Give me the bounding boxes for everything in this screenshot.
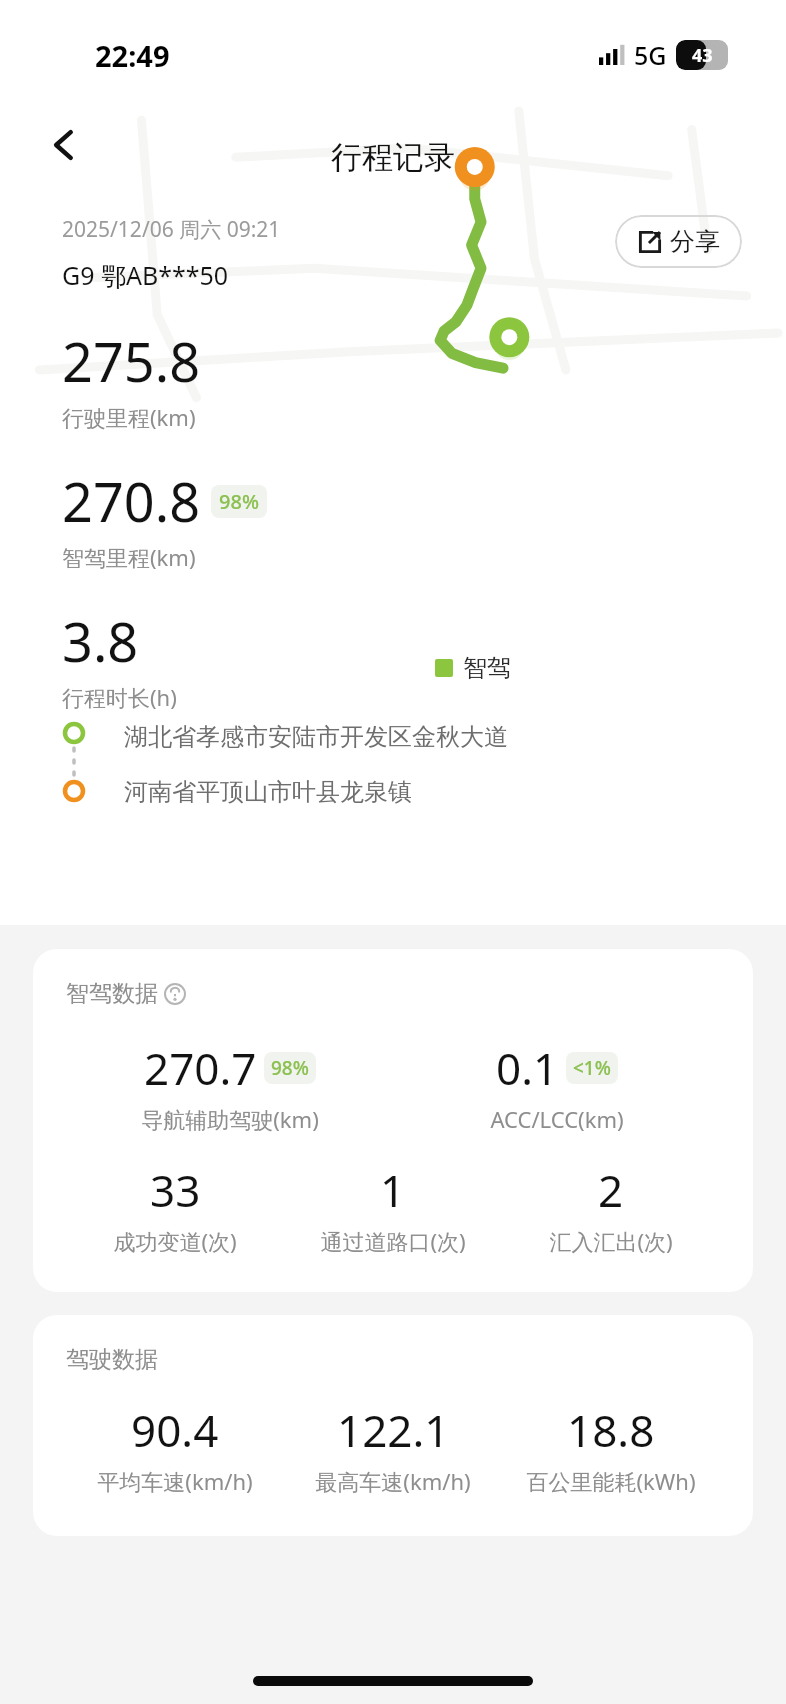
staticText: 5G — [634, 38, 667, 72]
staticText: 43 — [692, 43, 713, 68]
staticText: 1 — [380, 1160, 406, 1220]
staticText: 270.8 — [62, 464, 201, 538]
staticText: 18.8 — [567, 1400, 655, 1460]
button[interactable]: Back — [36, 117, 92, 173]
staticText: 河南省平顶山市叶县龙泉镇 — [124, 777, 412, 807]
button[interactable]: 分享 — [615, 215, 742, 268]
staticText: 3.8 — [62, 604, 139, 678]
staticText: 0.1 — [496, 1038, 559, 1098]
staticText: 275.8 — [62, 324, 201, 398]
staticText: 分享 — [670, 226, 720, 257]
staticText: 行驶里程(km) — [62, 402, 196, 432]
staticText: 2025/12/06 周六 09:21 — [62, 215, 281, 244]
staticText: 90.4 — [131, 1400, 219, 1460]
staticText: 98% — [271, 1055, 309, 1081]
staticText: ACC/LCC(km) — [490, 1104, 624, 1134]
staticText: 通过道路口(次) — [320, 1226, 466, 1256]
staticText: 行程时长(h) — [62, 682, 177, 712]
staticText: 33 — [150, 1160, 201, 1220]
staticText: 行程记录 — [331, 138, 455, 177]
staticText: 270.7 — [144, 1038, 257, 1098]
staticText: 2 — [598, 1160, 624, 1220]
staticText: <1% — [573, 1055, 611, 1081]
staticText: 最高车速(km/h) — [315, 1466, 471, 1496]
staticText: 98% — [219, 488, 259, 515]
staticText: 智驾数据 — [66, 979, 158, 1008]
staticText: 百公里能耗(kWh) — [526, 1466, 696, 1496]
staticText: 成功变道(次) — [113, 1226, 237, 1256]
staticText: 驾驶数据 — [66, 1345, 158, 1374]
staticText: 导航辅助驾驶(km) — [141, 1104, 319, 1134]
staticText: 22:49 — [95, 36, 170, 75]
staticText: 汇入汇出(次) — [549, 1226, 673, 1256]
staticText: 122.1 — [337, 1400, 450, 1460]
staticText: 湖北省孝感市安陆市开发区金秋大道 — [124, 722, 508, 752]
staticText: G9 鄂AB***50 — [62, 258, 229, 292]
staticText: 智驾里程(km) — [62, 542, 196, 572]
staticText: 平均车速(km/h) — [97, 1466, 253, 1496]
staticText: 智驾 — [463, 653, 511, 683]
